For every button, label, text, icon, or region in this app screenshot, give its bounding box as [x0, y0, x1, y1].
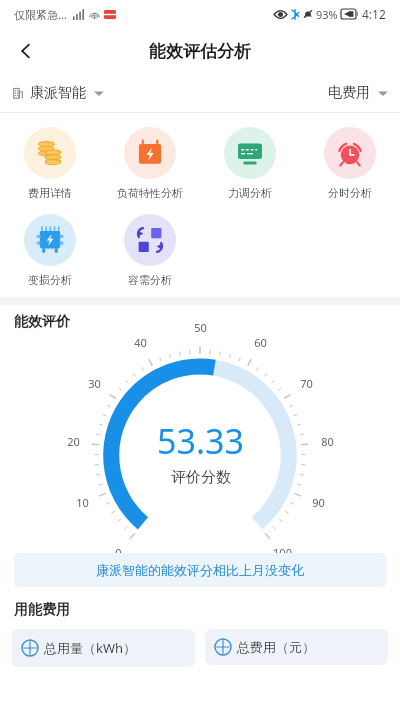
staticText: 负荷特性分析 [117, 186, 183, 200]
staticText: 93% [316, 7, 338, 22]
staticText: 53.33 [157, 418, 244, 464]
staticText: 能效评估分析 [149, 41, 251, 62]
button[interactable]: 返回 [6, 31, 46, 71]
staticText: 能效评价 [14, 313, 70, 331]
button[interactable]: 电费用 [328, 80, 388, 106]
staticText: 康派智能 [30, 84, 86, 102]
staticText: 80 [321, 434, 334, 449]
button[interactable]: 总费用（元） [205, 629, 388, 665]
staticText: 10 [76, 495, 89, 510]
staticText: 0 [115, 545, 122, 560]
staticText: 70 [300, 376, 313, 391]
button[interactable]: 负荷特性分析 [117, 123, 183, 204]
staticText: 60 [254, 335, 267, 350]
staticText: 变损分析 [28, 273, 72, 287]
staticText: 20 [67, 434, 80, 449]
staticText: 费用详情 [28, 186, 72, 200]
button[interactable]: 费用详情 [24, 123, 76, 204]
staticText: 容需分析 [128, 273, 172, 287]
button[interactable]: 康派智能 [12, 80, 104, 106]
button[interactable]: 总用量（kWh） [12, 629, 195, 667]
staticText: 用能费用 [14, 601, 70, 619]
staticText: 4:12 [362, 6, 386, 22]
button[interactable]: 变损分析 [24, 210, 76, 291]
button[interactable]: 力调分析 [224, 123, 276, 204]
staticText: 仅限紧急... [14, 7, 67, 22]
staticText: 康派智能的能效评分相比上月没变化 [96, 562, 304, 578]
staticText: 评价分数 [171, 468, 231, 487]
staticText: 电费用 [328, 84, 370, 102]
button[interactable]: 容需分析 [124, 210, 176, 291]
staticText: 40 [134, 335, 147, 350]
button[interactable]: 康派智能的能效评分相比上月没变化 [14, 553, 386, 587]
staticText: 分时分析 [328, 186, 372, 200]
staticText: 100 [273, 545, 292, 560]
staticText: 力调分析 [228, 186, 272, 200]
staticText: 总费用（元） [237, 639, 315, 655]
button[interactable]: 分时分析 [324, 123, 376, 204]
staticText: 总用量（kWh） [44, 639, 137, 657]
staticText: 30 [88, 376, 101, 391]
staticText: 90 [312, 495, 325, 510]
staticText: 50 [194, 320, 207, 335]
